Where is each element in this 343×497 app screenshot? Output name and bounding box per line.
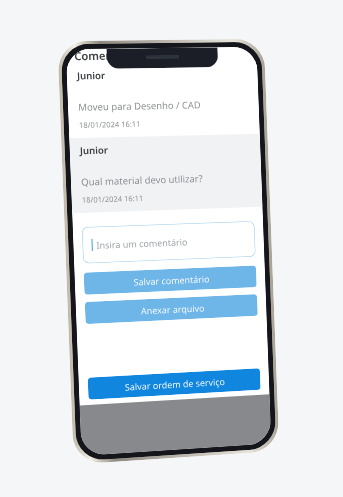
- staticText: Salvar comentário: [133, 272, 210, 288]
- staticText: Junior: [77, 69, 106, 82]
- staticText: Comentários: [74, 48, 144, 62]
- staticText: Insira um comentário: [91, 235, 188, 251]
- button[interactable]: Anexar arquivo: [85, 294, 258, 324]
- button[interactable]: Salvar ordem de serviço: [88, 368, 261, 400]
- staticText: 18/01/2024 16:11: [79, 118, 141, 130]
- staticText: Salvar ordem de serviço: [124, 375, 225, 393]
- button[interactable]: Insira um comentário: [82, 221, 256, 263]
- staticText: 18/01/2024 16:11: [82, 193, 144, 205]
- staticText: Qual material devo utilizar?: [81, 172, 203, 189]
- button[interactable]: Salvar comentário: [84, 265, 257, 295]
- staticText: Junior: [80, 143, 108, 157]
- staticText: Moveu para Desenho / CAD: [78, 98, 201, 114]
- staticText: Anexar arquivo: [140, 301, 205, 316]
